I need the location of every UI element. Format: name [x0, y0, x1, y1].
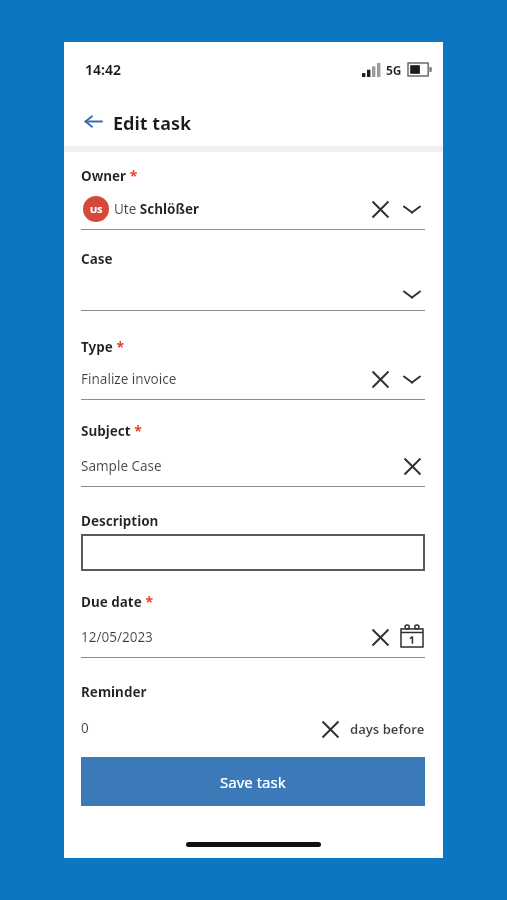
button[interactable]: Clear due date	[364, 621, 396, 653]
staticText: Due date *	[81, 592, 153, 611]
staticText: Subject *	[81, 421, 142, 440]
button[interactable]: Save task	[81, 757, 425, 806]
staticText: Sample Case	[81, 457, 162, 475]
staticText: Reminder	[81, 683, 147, 701]
staticText: Case	[81, 250, 113, 268]
staticText: Owner *	[81, 166, 138, 185]
staticText: 5G	[386, 62, 402, 78]
staticText: Edit task	[113, 111, 192, 136]
button[interactable]: Open case list	[396, 278, 428, 310]
staticText: 14:42	[85, 60, 121, 79]
staticText: Finalize invoice	[81, 370, 177, 388]
button[interactable]: Clear subject	[396, 450, 428, 482]
button[interactable]: Pick date	[396, 620, 428, 652]
button[interactable]: Open type list	[396, 363, 428, 395]
staticText: Ute Schlößer	[114, 200, 200, 218]
button[interactable]: Clear owner	[364, 193, 396, 225]
button[interactable]: Open owner list	[396, 193, 428, 225]
button[interactable]	[81, 534, 425, 571]
staticText: 0	[81, 719, 89, 737]
staticText: 12/05/2023	[81, 628, 153, 646]
staticText: Type *	[81, 337, 125, 356]
button[interactable]: Clear reminder	[314, 713, 346, 745]
staticText: days before	[350, 720, 425, 738]
staticText: US	[90, 203, 103, 216]
staticText: Description	[81, 512, 159, 530]
staticText: Save task	[220, 772, 286, 792]
button[interactable]: Clear type	[364, 363, 396, 395]
button[interactable]: Back	[78, 106, 108, 136]
